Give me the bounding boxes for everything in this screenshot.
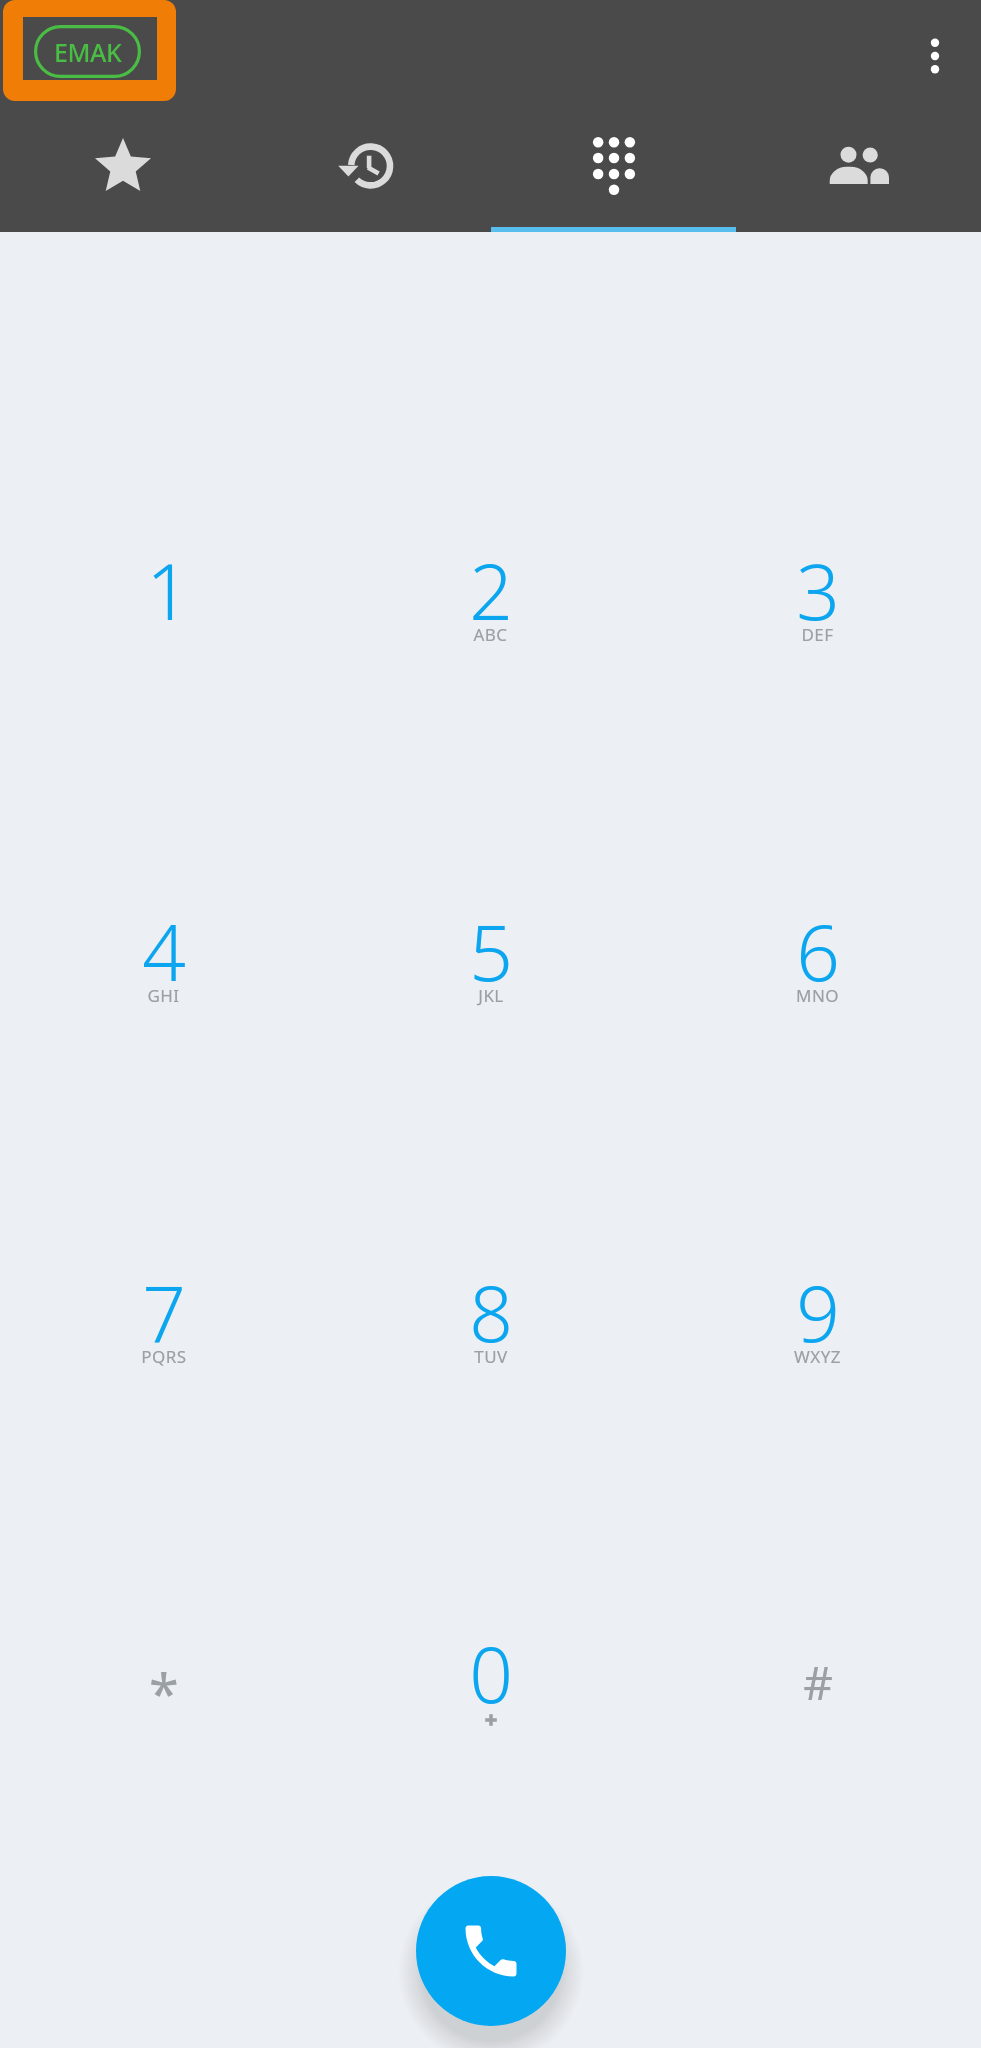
staticText: GHI [147,984,180,1007]
staticText: MNO [796,984,839,1007]
button[interactable]: 0 [327,1503,654,1864]
button[interactable]: Call history [246,112,491,232]
button[interactable]: 7 [0,1142,327,1503]
button[interactable]: Contacts [736,112,981,232]
staticText: ABC [473,623,508,646]
staticText: 1 [146,538,190,642]
staticText: # [803,1651,833,1714]
button[interactable]: * [0,1503,327,1864]
button[interactable]: EMAK [3,0,176,101]
button[interactable]: Call [416,1876,566,2026]
button[interactable]: 2 [327,420,654,781]
button[interactable]: More options [895,8,975,104]
staticText: 7 [142,1260,186,1364]
staticText: 4 [142,899,186,1003]
staticText: 2 [469,538,513,642]
button[interactable]: # [654,1503,981,1864]
staticText: PQRS [141,1345,187,1368]
button[interactable]: 5 [327,781,654,1142]
button[interactable]: Favorites [0,112,246,232]
staticText: EMAK [54,35,122,69]
button[interactable]: 8 [327,1142,654,1503]
staticText: WXYZ [794,1345,841,1368]
button[interactable]: 4 [0,781,327,1142]
button[interactable]: 1 [0,420,327,781]
button[interactable]: 9 [654,1142,981,1503]
staticText: 5 [469,899,513,1003]
staticText: 9 [796,1260,840,1364]
staticText: 8 [469,1260,513,1364]
staticText: 0 [469,1621,513,1725]
staticText: JKL [478,984,504,1007]
staticText: DEF [801,623,834,646]
staticText: TUV [474,1345,508,1368]
staticText: 6 [796,899,840,1003]
button[interactable]: Dialpad [491,112,736,232]
staticText: * [149,1656,179,1730]
staticText: 3 [796,538,840,642]
button[interactable]: 6 [654,781,981,1142]
button[interactable]: 3 [654,420,981,781]
